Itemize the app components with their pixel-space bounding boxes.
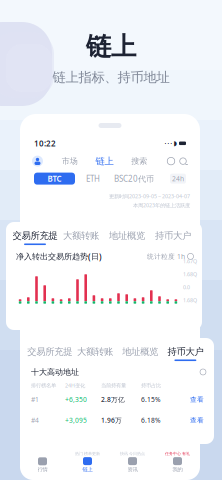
button[interactable]: 快讯 今日热点 xyxy=(110,451,155,473)
button[interactable]: 持币大户 xyxy=(163,338,208,361)
button[interactable] xyxy=(20,451,65,473)
staticText: 排行榜名单 xyxy=(31,382,56,389)
staticText: 查看 xyxy=(190,395,204,403)
staticText: 搜索 xyxy=(131,156,147,166)
staticText: 1.96万 xyxy=(101,416,122,425)
staticText: ⋯ xyxy=(164,139,172,148)
button[interactable]: 交易所充提 xyxy=(12,222,58,245)
staticText: 持币大户 xyxy=(167,346,203,357)
staticText: +6,350 xyxy=(65,395,87,404)
button[interactable]: 刷新 xyxy=(185,252,196,260)
staticText: 当前持有量 xyxy=(101,382,126,389)
staticText: 24H变化 xyxy=(65,382,85,389)
staticText: 查看 xyxy=(190,416,204,424)
staticText: 6.15% xyxy=(141,395,161,404)
staticText: 快讯 今日热点 xyxy=(120,451,145,456)
staticText: 1.68Q xyxy=(183,271,197,278)
staticText: +3,095 xyxy=(65,416,87,425)
staticText: 大额转账 xyxy=(63,230,99,241)
button[interactable]: 地址概览 xyxy=(104,222,150,245)
button[interactable]: 搜索 xyxy=(131,156,147,166)
staticText: 1.68Q xyxy=(183,297,197,304)
staticText: 2.8万亿 xyxy=(101,395,125,404)
button[interactable]: BSC20代币 xyxy=(111,173,157,185)
button[interactable]: 刷新 xyxy=(165,155,177,167)
staticText: 链上 xyxy=(95,155,113,167)
staticText: 10:22 xyxy=(34,138,56,149)
button[interactable]: 持币大户 xyxy=(150,222,196,245)
staticText: 交易所充提 xyxy=(12,230,57,241)
button[interactable]: 搜索 xyxy=(177,155,189,167)
staticText: 0.0 xyxy=(183,284,190,291)
staticText: 地址概览 xyxy=(109,230,145,241)
button[interactable]: #4 xyxy=(21,410,214,431)
staticText: 任务中心 有礼 xyxy=(165,451,190,456)
button[interactable]: #1 xyxy=(21,389,214,410)
staticText: ◗ xyxy=(173,139,177,147)
button[interactable]: 市场 xyxy=(62,156,78,166)
staticText: 热门 榜单更新 xyxy=(75,451,100,456)
staticText: 6.18% xyxy=(141,416,161,425)
staticText: 地址概览 xyxy=(122,346,158,357)
staticText: 统计粒度 1h xyxy=(147,252,185,261)
button[interactable]: 大额转账 xyxy=(72,338,117,361)
button[interactable]: 大额转账 xyxy=(58,222,104,245)
staticText: #4 xyxy=(31,416,39,425)
staticText: 大额转账 xyxy=(77,346,113,357)
button[interactable]: ETH xyxy=(75,173,111,185)
staticText: BTC xyxy=(47,173,61,184)
staticText: 十大高动地址 xyxy=(31,367,79,377)
staticText: 持币占比 xyxy=(141,382,161,389)
staticText: 市场 xyxy=(62,156,78,166)
staticText: BSC20代币 xyxy=(114,173,154,184)
staticText: 链上 xyxy=(82,466,92,473)
button[interactable]: 交易所充提 xyxy=(27,338,72,361)
staticText: 资讯 xyxy=(127,466,137,473)
staticText: 链上 xyxy=(86,31,136,62)
staticText: 本周2023年的链上活跃度 xyxy=(133,202,190,209)
button[interactable]: 刷新 xyxy=(198,368,208,376)
button[interactable]: 账户 xyxy=(31,155,44,168)
button[interactable]: BTC xyxy=(34,173,75,185)
staticText: 持币大户 xyxy=(155,230,191,241)
button[interactable]: 任务中心 有礼 xyxy=(155,451,200,473)
button[interactable]: 热门 榜单更新 xyxy=(65,451,110,473)
staticText: 交易所充提 xyxy=(27,346,72,357)
staticText: 我的 xyxy=(172,466,182,473)
staticText: 净入转出交易所趋势(日) xyxy=(16,251,102,262)
button[interactable]: 链上 xyxy=(95,155,113,167)
staticText: 链上指标、持币地址 xyxy=(52,69,169,85)
staticText: 24h xyxy=(172,174,184,183)
staticText: ETH xyxy=(86,173,100,184)
staticText: 1.67Q xyxy=(183,258,197,265)
staticText: 行情 xyxy=(37,466,47,473)
staticText: 更新时间2023-09-05 ~ 2023-04-07 xyxy=(109,193,190,200)
staticText: #1 xyxy=(31,395,39,404)
button[interactable]: 24h xyxy=(170,174,186,184)
button[interactable]: 地址概览 xyxy=(117,338,163,361)
